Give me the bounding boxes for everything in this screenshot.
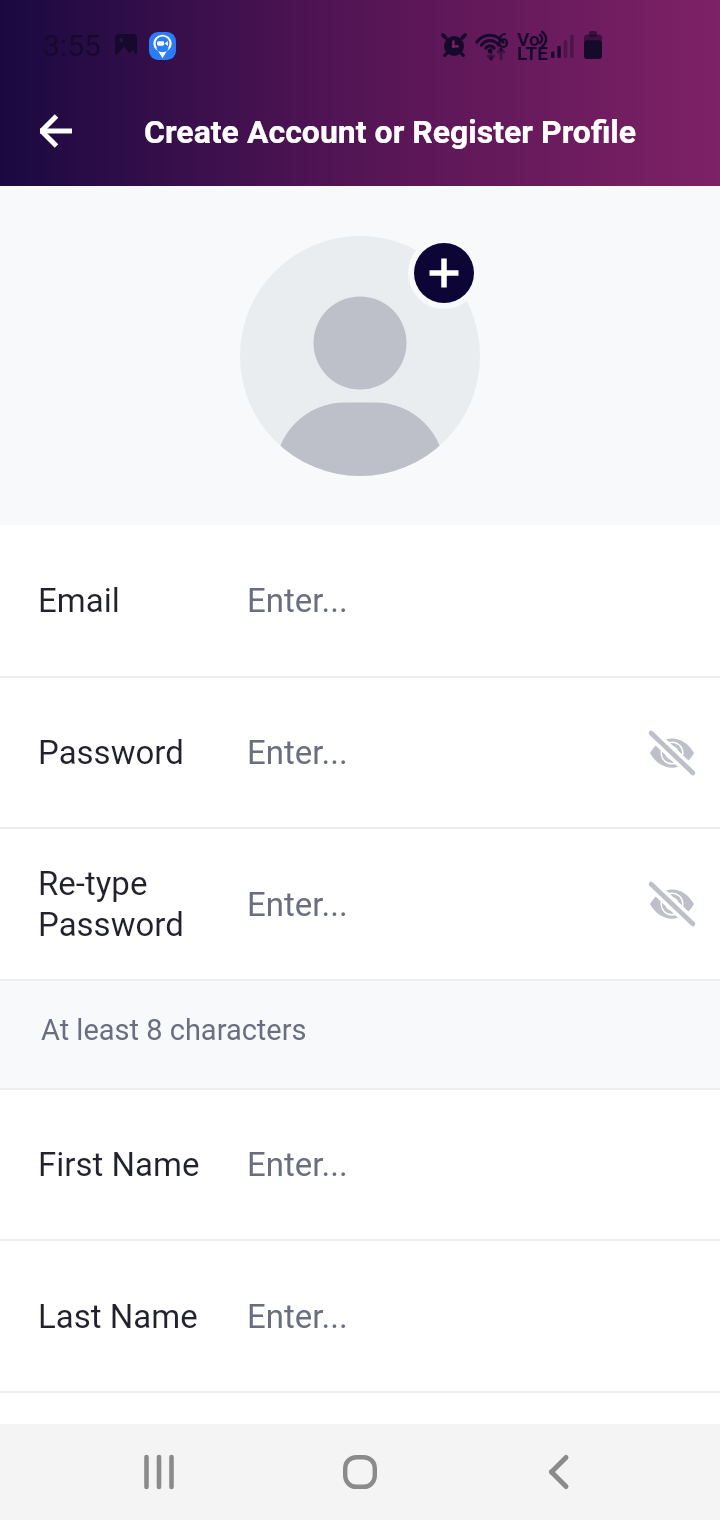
button[interactable]: Password: [0, 678, 720, 827]
staticText: At least 8 characters: [41, 1013, 307, 1047]
button[interactable]: Re-type Password: [0, 829, 720, 979]
button[interactable]: Show password: [628, 709, 716, 797]
button[interactable]: Show password: [628, 860, 716, 948]
staticText: Re-type Password: [38, 864, 247, 944]
button[interactable]: Add profile photo: [414, 243, 474, 303]
button[interactable]: Email: [0, 525, 720, 676]
staticText: Vo: [517, 28, 540, 50]
button[interactable]: First Name: [0, 1090, 720, 1239]
staticText: Create Account or Register Profile: [144, 113, 637, 151]
staticText: Email: [38, 581, 247, 620]
staticText: Last Name: [38, 1297, 247, 1336]
button[interactable]: Navigate back: [16, 99, 96, 163]
button[interactable]: Home: [305, 1424, 415, 1520]
staticText: 6: [497, 29, 509, 54]
staticText: LTE: [517, 42, 548, 64]
staticText: Enter...: [247, 1297, 348, 1336]
staticText: Password: [38, 733, 247, 772]
staticText: Enter...: [247, 581, 348, 620]
staticText: Enter...: [247, 1145, 348, 1184]
button[interactable]: Last Name: [0, 1241, 720, 1391]
staticText: 3:55: [43, 28, 101, 63]
button[interactable]: Recent apps: [104, 1424, 214, 1520]
button[interactable]: Back: [505, 1424, 615, 1520]
staticText: Enter...: [247, 885, 348, 924]
staticText: Enter...: [247, 733, 348, 772]
staticText: First Name: [38, 1145, 247, 1184]
